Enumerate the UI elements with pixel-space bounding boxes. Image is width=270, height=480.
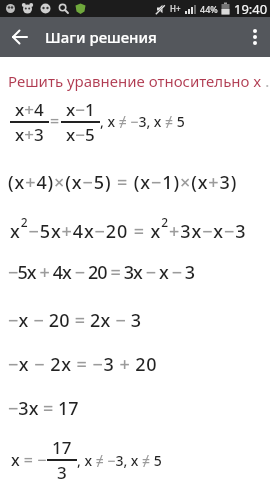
staticText: (x+4)×(x−5) = (x−1)×(x+3) xyxy=(8,170,238,195)
staticText: Решить уравнение относительно x . xyxy=(8,71,270,91)
staticText: −3x = 17 xyxy=(8,396,79,421)
button[interactable] xyxy=(0,17,40,57)
staticText: x = − xyxy=(11,449,47,471)
staticText: x+3 xyxy=(15,123,44,144)
staticText: 3 xyxy=(57,461,67,480)
staticText: −x − 2x = −3 + 20 xyxy=(8,352,157,377)
button[interactable] xyxy=(234,19,270,55)
staticText: −x − 20 = 2x − 3 xyxy=(8,308,142,333)
staticText: x2−5x+4x−20 = x2+3x−x−3 xyxy=(10,214,247,243)
staticText: −5x + 4x − 20 = 3x − x − 3 xyxy=(8,260,195,285)
staticText: 17 xyxy=(52,436,72,459)
staticText: x−5 xyxy=(66,123,95,144)
staticText: Шаги решения xyxy=(45,27,157,47)
staticText: x+4 xyxy=(15,98,44,121)
staticText: H+ xyxy=(170,3,181,14)
staticText: , x ≠ −3, x ≠ 5 xyxy=(100,112,185,131)
staticText: = xyxy=(50,110,60,132)
staticText: , x ≠ −3, x ≠ 5 xyxy=(77,451,162,470)
staticText: 44% xyxy=(200,3,218,15)
staticText: 19:40 xyxy=(234,0,268,17)
staticText: x−1 xyxy=(66,98,95,121)
